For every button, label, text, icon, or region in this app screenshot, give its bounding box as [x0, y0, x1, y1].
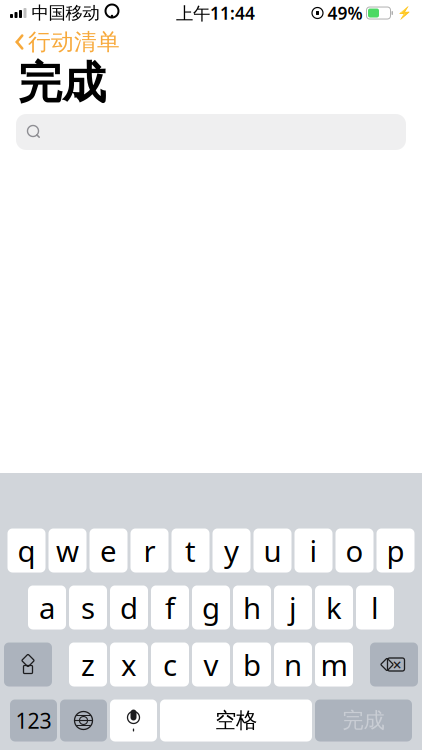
staticText: c	[163, 645, 177, 684]
staticText: r	[143, 531, 155, 570]
staticText: h	[243, 588, 261, 627]
button[interactable]: e	[89, 528, 127, 572]
button[interactable]: x	[110, 642, 148, 686]
staticText: 行动清单	[28, 28, 120, 56]
staticText: 49%	[327, 1, 362, 24]
staticText: p	[386, 531, 404, 570]
button[interactable]: q	[7, 528, 45, 572]
button[interactable]: 完成	[315, 699, 412, 741]
button[interactable]: f	[151, 585, 189, 629]
button[interactable]: u	[253, 528, 291, 572]
staticText: n	[284, 645, 302, 684]
staticText: d	[120, 588, 138, 627]
button[interactable]: b	[233, 642, 271, 686]
staticText: e	[100, 531, 117, 570]
staticText: y	[224, 531, 239, 570]
button[interactable]: 空格	[160, 699, 312, 741]
staticText: f	[165, 588, 175, 627]
button[interactable]: d	[110, 585, 148, 629]
staticText: m	[320, 645, 347, 684]
staticText: o	[345, 531, 363, 570]
staticText: ×	[392, 654, 401, 675]
button[interactable]: m	[315, 642, 353, 686]
staticText: k	[326, 588, 342, 627]
button[interactable]: a	[28, 585, 66, 629]
staticText: w	[56, 531, 79, 570]
button[interactable]: Shift	[4, 642, 52, 686]
button[interactable]: Next keyboard	[60, 699, 107, 741]
staticText: a	[39, 588, 55, 627]
staticText: 上午11:44	[176, 1, 255, 24]
button[interactable]: w	[48, 528, 86, 572]
button[interactable]: h	[233, 585, 271, 629]
staticText: l	[371, 588, 379, 627]
button[interactable]: r	[130, 528, 168, 572]
button[interactable]: p	[376, 528, 414, 572]
button[interactable]: s	[69, 585, 107, 629]
button[interactable]: k	[315, 585, 353, 629]
staticText: s	[81, 588, 95, 627]
button[interactable]: t	[171, 528, 209, 572]
staticText: 空格	[215, 707, 257, 734]
button[interactable]: 123	[10, 699, 57, 741]
staticText: ⚡	[397, 6, 412, 20]
button[interactable]: Dictation	[110, 699, 157, 741]
button[interactable]: c	[151, 642, 189, 686]
staticText: 完成	[18, 56, 106, 110]
staticText: 中国移动	[31, 2, 99, 24]
staticText: u	[263, 531, 281, 570]
staticText: x	[121, 645, 137, 684]
button[interactable]: l	[356, 585, 394, 629]
staticText: j	[289, 588, 297, 627]
button[interactable]: o	[335, 528, 373, 572]
staticText: z	[81, 645, 95, 684]
staticText: v	[203, 645, 218, 684]
button[interactable]: j	[274, 585, 312, 629]
staticText: t	[185, 531, 196, 570]
button[interactable]: z	[69, 642, 107, 686]
button[interactable]: y	[212, 528, 250, 572]
staticText: 完成	[342, 707, 384, 734]
button[interactable]: Delete	[370, 642, 418, 686]
button[interactable]	[16, 114, 406, 150]
staticText: 123	[15, 706, 51, 735]
button[interactable]: n	[274, 642, 312, 686]
button[interactable]: v	[192, 642, 230, 686]
staticText: i	[309, 531, 317, 570]
staticText: g	[202, 588, 220, 627]
staticText: b	[243, 645, 261, 684]
button[interactable]: i	[294, 528, 332, 572]
button[interactable]: 行动清单	[4, 26, 130, 58]
button[interactable]: g	[192, 585, 230, 629]
staticText: q	[17, 531, 35, 570]
